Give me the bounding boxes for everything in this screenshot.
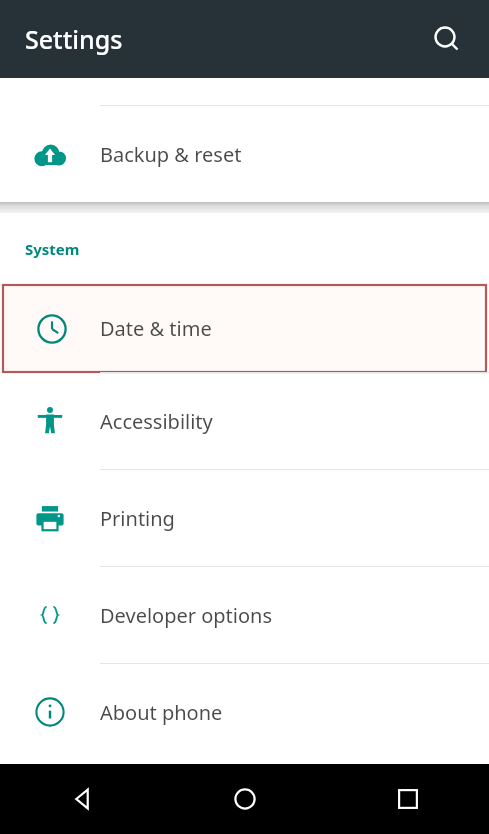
button[interactable]: Date & time — [3, 285, 486, 372]
staticText: System — [25, 239, 80, 259]
staticText: Accessibility — [100, 408, 213, 435]
staticText: Backup & reset — [100, 141, 242, 168]
button[interactable]: Back — [0, 764, 163, 834]
staticText: Printing — [100, 505, 175, 532]
button[interactable]: Backup & reset — [0, 106, 489, 202]
staticText: Settings — [25, 22, 123, 56]
staticText: Date & time — [100, 315, 212, 342]
staticText: Developer options — [100, 602, 273, 629]
button[interactable]: Printing — [0, 470, 489, 566]
button[interactable]: Home — [163, 764, 326, 834]
button[interactable]: Accessibility — [0, 373, 489, 469]
staticText: About phone — [100, 699, 223, 726]
button[interactable]: Developer options — [0, 567, 489, 663]
button[interactable]: About phone — [0, 664, 489, 760]
button[interactable]: Recent apps — [326, 764, 489, 834]
button[interactable]: Search — [423, 15, 471, 63]
